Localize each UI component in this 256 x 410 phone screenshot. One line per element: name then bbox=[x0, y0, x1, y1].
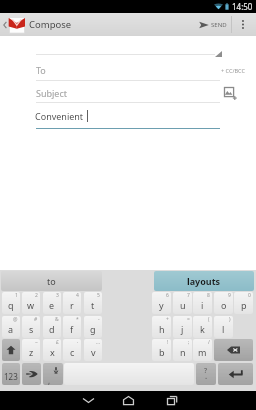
button[interactable]: Enter bbox=[218, 363, 253, 385]
button[interactable]: 1 bbox=[2, 292, 20, 314]
button[interactable]: Shift bbox=[2, 339, 20, 361]
staticText: 5 bbox=[97, 292, 100, 299]
staticText: + bbox=[166, 316, 169, 323]
button[interactable]: Home bbox=[108, 391, 148, 410]
button[interactable]: # bbox=[22, 316, 40, 338]
button[interactable]: to bbox=[1, 271, 102, 291]
button[interactable]: Compose bbox=[9, 13, 72, 36]
staticText: 4 bbox=[76, 292, 79, 299]
staticText: r bbox=[70, 299, 74, 311]
button[interactable]: = bbox=[173, 316, 192, 338]
button[interactable]: layouts bbox=[154, 271, 254, 291]
staticText: 7 bbox=[187, 292, 190, 299]
button[interactable]: 6 bbox=[152, 292, 171, 314]
staticText: o bbox=[221, 299, 227, 311]
staticText: v bbox=[91, 346, 96, 358]
staticText: l bbox=[222, 323, 225, 335]
staticText: Convenient bbox=[35, 110, 84, 122]
button[interactable]: 7 bbox=[173, 292, 192, 314]
button[interactable]: 2 bbox=[22, 292, 40, 314]
staticText: * bbox=[76, 316, 79, 323]
staticText: t bbox=[91, 299, 95, 311]
other: Backspace bbox=[227, 346, 240, 354]
staticText: to bbox=[47, 275, 56, 287]
button[interactable] bbox=[64, 363, 194, 385]
staticText: = bbox=[187, 316, 190, 323]
other: Shift bbox=[6, 345, 16, 355]
staticText: z bbox=[29, 346, 34, 358]
staticText: 6 bbox=[166, 292, 169, 299]
button[interactable]: 123 bbox=[2, 363, 20, 385]
button[interactable]: ? bbox=[196, 363, 216, 385]
button[interactable]: ~ bbox=[22, 339, 40, 361]
staticText: y bbox=[159, 299, 164, 311]
other: Enter bbox=[228, 369, 243, 379]
button[interactable]: Attach picture bbox=[224, 87, 237, 100]
button[interactable]: ! bbox=[152, 339, 171, 361]
staticText: 2 bbox=[35, 292, 38, 299]
staticText: & bbox=[55, 316, 59, 323]
button[interactable]: Gesture typing bbox=[22, 363, 41, 385]
button[interactable]: Recent apps bbox=[152, 391, 192, 410]
staticText: d bbox=[49, 323, 55, 335]
staticText: / bbox=[208, 339, 210, 346]
staticText: p bbox=[241, 299, 247, 311]
button[interactable]: 5 bbox=[84, 292, 102, 314]
staticText: ? bbox=[204, 366, 208, 376]
staticText: - bbox=[98, 316, 100, 323]
button[interactable]: 9 bbox=[214, 292, 233, 314]
staticText: · bbox=[77, 339, 79, 346]
staticText: SEND bbox=[211, 21, 227, 29]
button[interactable]: SEND bbox=[195, 13, 231, 36]
staticText: 8 bbox=[207, 292, 210, 299]
button[interactable]: … bbox=[84, 339, 102, 361]
button[interactable]: Back bbox=[68, 391, 108, 410]
staticText: . bbox=[205, 370, 208, 381]
button[interactable]: £ bbox=[43, 339, 61, 361]
staticText: 123 bbox=[4, 371, 18, 382]
staticText: a bbox=[8, 323, 14, 335]
button[interactable]: 3 bbox=[43, 292, 61, 314]
staticText: b bbox=[159, 346, 165, 358]
button[interactable]: / bbox=[193, 339, 212, 361]
staticText: ) bbox=[229, 316, 231, 323]
staticText: layouts bbox=[187, 275, 221, 287]
button[interactable]: Backspace bbox=[214, 339, 253, 361]
button[interactable]: More options bbox=[233, 13, 253, 36]
staticText: n bbox=[180, 346, 186, 358]
staticText: w bbox=[27, 299, 35, 311]
button[interactable]: & bbox=[43, 316, 61, 338]
button[interactable]: ( bbox=[193, 316, 212, 338]
button[interactable]: ) bbox=[214, 316, 233, 338]
staticText: s bbox=[29, 323, 34, 335]
staticText: 9 bbox=[228, 292, 231, 299]
button[interactable]: 8 bbox=[193, 292, 212, 314]
other: Voice input bbox=[54, 367, 58, 374]
button[interactable]: + CC/BCC bbox=[221, 64, 245, 77]
button[interactable]: @ bbox=[2, 316, 20, 338]
staticText: 1 bbox=[15, 292, 18, 299]
staticText: f bbox=[70, 323, 74, 335]
staticText: ! bbox=[167, 339, 169, 346]
button[interactable]: Voice input bbox=[43, 363, 63, 385]
staticText: c bbox=[70, 346, 75, 358]
button[interactable]: Navigate up bbox=[0, 13, 9, 36]
button[interactable]: 0 bbox=[234, 292, 253, 314]
staticText: k bbox=[200, 323, 205, 335]
button[interactable]: + bbox=[152, 316, 171, 338]
staticText: m bbox=[198, 346, 207, 358]
staticText: + CC/BCC bbox=[221, 67, 245, 74]
staticText: , bbox=[48, 375, 51, 385]
button[interactable]: ; bbox=[173, 339, 192, 361]
staticText: £ bbox=[56, 339, 59, 346]
staticText: j bbox=[181, 323, 184, 335]
staticText: 0 bbox=[248, 292, 251, 299]
staticText: 14:50 bbox=[232, 1, 253, 12]
button[interactable]: · bbox=[63, 339, 81, 361]
staticText: ~ bbox=[35, 339, 38, 346]
staticText: @ bbox=[13, 316, 18, 323]
button[interactable]: 4 bbox=[63, 292, 81, 314]
staticText: Subject bbox=[36, 87, 68, 99]
button[interactable]: * bbox=[63, 316, 81, 338]
button[interactable]: - bbox=[84, 316, 102, 338]
